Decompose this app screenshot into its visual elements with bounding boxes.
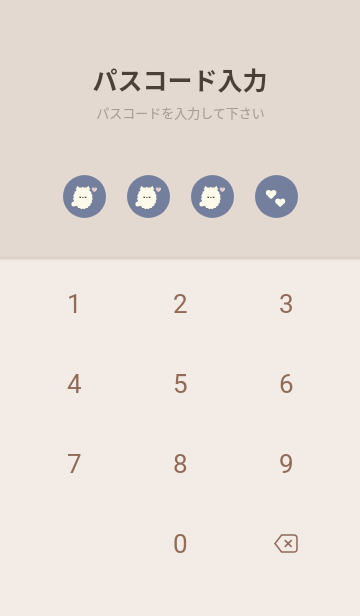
button[interactable]: 6 xyxy=(233,344,339,424)
staticText: 5 xyxy=(173,369,188,399)
staticText: パスコード入力 xyxy=(92,61,268,97)
staticText: 9 xyxy=(279,449,294,479)
button[interactable]: 3 xyxy=(233,264,339,344)
button[interactable]: 2 xyxy=(127,264,233,344)
staticText: パスコードを入力して下さい xyxy=(96,103,265,122)
button[interactable]: 5 xyxy=(127,344,233,424)
staticText: 1 xyxy=(67,289,82,319)
button[interactable]: 4 xyxy=(21,344,127,424)
staticText: 0 xyxy=(173,529,188,559)
button[interactable]: Delete xyxy=(233,504,339,584)
staticText: 2 xyxy=(173,289,188,319)
staticText: 6 xyxy=(279,369,294,399)
other: Delete xyxy=(233,504,339,584)
staticText: 4 xyxy=(67,369,82,399)
button[interactable]: 0 xyxy=(127,504,233,584)
button[interactable]: 9 xyxy=(233,424,339,504)
staticText: 3 xyxy=(279,289,294,319)
button[interactable]: 8 xyxy=(127,424,233,504)
staticText: 7 xyxy=(67,449,82,479)
button[interactable]: 7 xyxy=(21,424,127,504)
staticText: 8 xyxy=(173,449,188,479)
button[interactable]: 1 xyxy=(21,264,127,344)
